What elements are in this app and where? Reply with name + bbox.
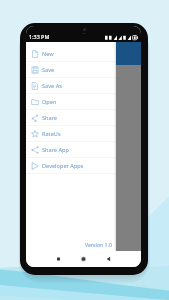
button[interactable]: Open xyxy=(26,94,116,109)
button[interactable]: New xyxy=(26,46,116,61)
staticText: Save xyxy=(42,66,55,74)
staticText: Open xyxy=(42,98,57,106)
staticText: Developer Apps xyxy=(42,162,84,170)
staticText: Share xyxy=(42,114,58,122)
staticText: 1:33 PM xyxy=(29,33,50,40)
button[interactable]: Share xyxy=(26,110,116,125)
staticText: New xyxy=(42,50,54,58)
staticText: Version 1.0 xyxy=(85,241,112,248)
button[interactable]: RateUs xyxy=(26,126,116,141)
button[interactable]: Share App xyxy=(26,142,116,157)
staticText: Save As xyxy=(42,82,62,90)
button[interactable]: Developer Apps xyxy=(26,158,116,173)
button[interactable]: Save xyxy=(26,62,116,77)
staticText: Share App xyxy=(42,146,69,154)
button[interactable]: Save As xyxy=(26,78,116,93)
staticText: RateUs xyxy=(42,130,61,138)
